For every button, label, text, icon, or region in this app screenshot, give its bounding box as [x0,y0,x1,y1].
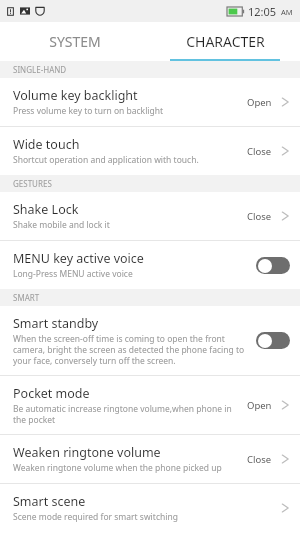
button[interactable]: Smart scene [0,484,300,532]
staticText: Open [247,96,272,109]
staticText: Volume key backlight [13,87,138,104]
button[interactable]: Shake Lock [0,192,300,240]
button[interactable]: Volume key backlight [0,78,300,126]
button[interactable]: MENU key active voice [0,241,300,289]
button[interactable]: Toggle Smart standby [256,332,290,349]
button[interactable]: Weaken ringtone volume [0,435,300,483]
staticText: Weaken ringtone volume [13,444,161,461]
staticText: SYSTEM [49,32,101,51]
staticText: Close [247,145,272,158]
staticText: Scene mode required for smart switching [13,511,178,523]
staticText: Shake mobile and lock it [13,219,110,231]
staticText: Wide touch [13,136,80,153]
staticText: Long-Press MENU active voice [13,268,133,280]
staticText: Pocket mode [13,385,90,402]
button[interactable]: Wide touch [0,127,300,175]
staticText: When the screen-off time is coming to op… [13,333,248,366]
staticText: 12:05 [248,4,277,19]
button[interactable]: Smart standby [0,306,300,375]
button[interactable]: Toggle MENU key active voice [256,257,290,274]
button[interactable]: Pocket mode [0,376,300,434]
staticText: Shortcut operation and application with … [13,154,199,166]
staticText: Shake Lock [13,201,79,218]
staticText: Be automatic increase ringtone volume,wh… [13,403,239,425]
staticText: Open [247,399,272,412]
button[interactable]: SYSTEM [0,22,150,61]
button[interactable]: CHARACTER [150,22,300,61]
staticText: CHARACTER [186,32,265,51]
staticText: SINGLE-HAND [13,64,67,75]
staticText: Smart standby [13,315,99,332]
staticText: Press volume key to turn on backlight [13,105,164,117]
staticText: SMART [13,292,40,303]
staticText: MENU key active voice [13,250,144,267]
staticText: Close [247,453,272,466]
staticText: Smart scene [13,493,86,510]
staticText: GESTURES [13,178,52,189]
staticText: AM [281,7,293,17]
staticText: Close [247,210,272,223]
staticText: Weaken ringtone volume when the phone pi… [13,462,222,474]
